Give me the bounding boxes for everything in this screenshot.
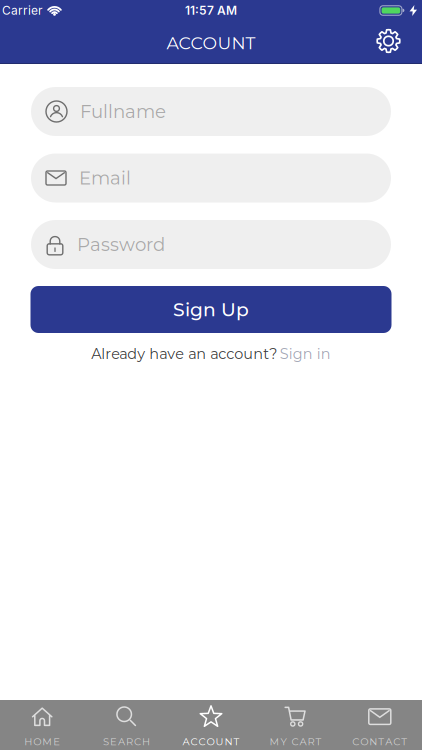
staticText: Carrier	[2, 3, 43, 18]
staticText: A C C O U N T	[182, 736, 239, 748]
button[interactable]: H O M E	[0, 700, 84, 750]
staticText: ACCOUNT	[166, 32, 255, 53]
staticText: M Y C A R T	[269, 736, 321, 748]
button[interactable]: M Y C A R T	[253, 700, 338, 750]
button[interactable]: S E A R C H	[84, 700, 169, 750]
staticText: Email	[79, 167, 131, 189]
staticText: Sign Up	[173, 298, 249, 321]
button[interactable]: Sign in	[280, 345, 331, 363]
staticText: C O N T A C T	[352, 736, 407, 748]
staticText: S E A R C H	[103, 736, 150, 748]
button[interactable]: A C C O U N T	[169, 700, 253, 750]
button[interactable]: Settings	[376, 28, 401, 53]
staticText: Already have an account?	[91, 345, 277, 363]
button[interactable]: Sign Up	[30, 286, 391, 333]
button[interactable]: C O N T A C T	[338, 700, 422, 750]
button[interactable]: Password	[31, 220, 391, 269]
button[interactable]: Email	[31, 153, 391, 202]
staticText: 11:57 AM	[185, 3, 237, 18]
staticText: Fullname	[80, 100, 166, 122]
button[interactable]: Fullname	[31, 87, 391, 136]
staticText: H O M E	[24, 736, 60, 748]
staticText: Password	[77, 233, 165, 255]
staticText: Sign in	[280, 345, 331, 363]
